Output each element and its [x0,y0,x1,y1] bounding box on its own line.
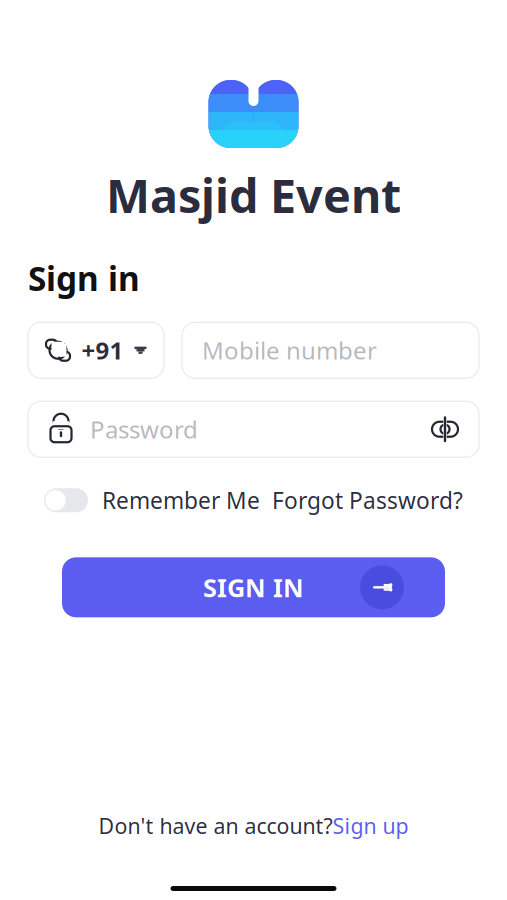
button[interactable]: Mobile number [182,322,479,378]
staticText: Remember Me [102,485,260,515]
staticText: Sign in [28,256,140,300]
button[interactable]: SIGN IN [62,557,445,617]
button[interactable]: Password [28,401,479,457]
staticText: Masjid Event [106,164,401,226]
staticText: Password [90,413,198,445]
staticText: +91 [81,334,123,366]
button[interactable]: Country code +91 [28,322,164,378]
button[interactable]: Forgot Password? [272,485,463,515]
staticText: Sign up [332,812,408,840]
button[interactable]: Remember Me [44,485,260,515]
staticText: Forgot Password? [272,485,463,515]
staticText: SIGN IN [203,570,304,604]
button[interactable]: Don't have an account? [98,812,408,840]
staticText: Mobile number [202,334,377,366]
staticText: Don't have an account? [98,812,332,840]
